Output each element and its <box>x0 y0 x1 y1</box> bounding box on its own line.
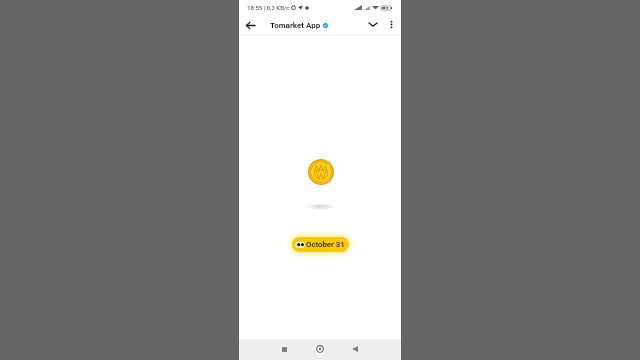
staticText: October 31 <box>306 240 345 249</box>
button[interactable]: Back <box>348 342 362 356</box>
staticText: Tomarket App <box>270 21 321 30</box>
staticText: 18:55 | 0,3 KB/c <box>247 4 290 11</box>
button[interactable]: Expand <box>366 18 379 31</box>
button[interactable]: Recent apps <box>277 342 291 356</box>
button[interactable]: More options <box>385 18 398 31</box>
button[interactable]: Home <box>313 342 327 356</box>
button[interactable]: October 31 <box>292 237 349 252</box>
button[interactable]: Back <box>244 18 257 31</box>
